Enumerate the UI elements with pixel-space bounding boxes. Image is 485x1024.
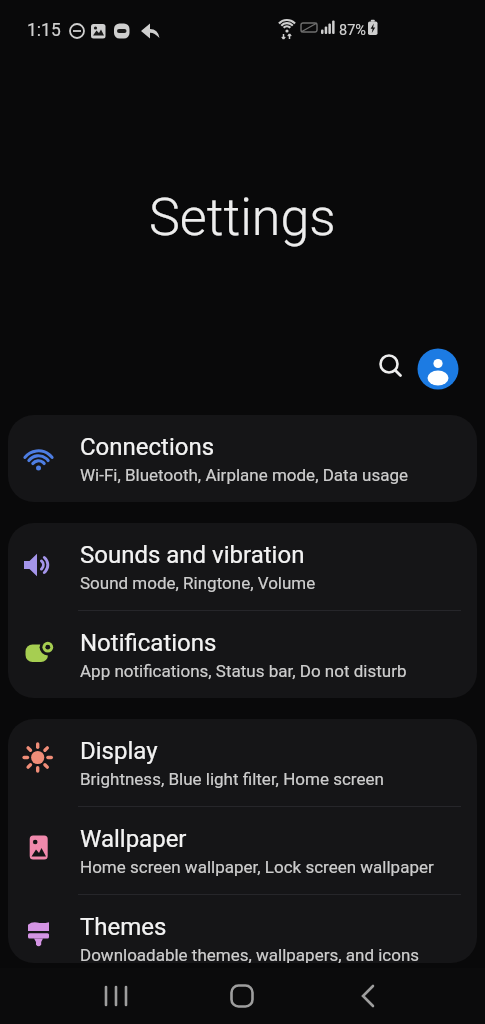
staticText: Sounds and vibration — [80, 541, 305, 569]
button[interactable]: Notifications — [8, 611, 477, 698]
staticText: 1:15 — [27, 20, 61, 41]
button[interactable]: Wallpaper — [8, 807, 477, 894]
staticText: Downloadable themes, wallpapers, and ico… — [80, 945, 420, 963]
staticText: 87% — [339, 22, 366, 39]
staticText: Display — [80, 737, 158, 765]
staticText: Themes — [80, 913, 167, 941]
staticText: Wallpaper — [80, 825, 187, 853]
button[interactable] — [348, 976, 388, 1016]
staticText: App notifications, Status bar, Do not di… — [80, 661, 407, 681]
button[interactable]: Themes — [8, 895, 477, 963]
button[interactable]: Sounds and vibration — [8, 523, 477, 610]
staticText: Notifications — [80, 629, 217, 657]
staticText: Brightness, Blue light filter, Home scre… — [80, 769, 384, 789]
staticText: Wi-Fi, Bluetooth, Airplane mode, Data us… — [80, 465, 409, 485]
button[interactable]: Display — [8, 719, 477, 806]
staticText: Home screen wallpaper, Lock screen wallp… — [80, 857, 434, 877]
button[interactable] — [222, 976, 262, 1016]
staticText: Connections — [80, 433, 215, 461]
button[interactable] — [376, 352, 404, 380]
button[interactable] — [96, 976, 136, 1016]
staticText: Sound mode, Ringtone, Volume — [80, 573, 316, 593]
button[interactable]: Connections — [8, 415, 477, 502]
button[interactable] — [417, 348, 459, 390]
staticText: Settings — [149, 187, 336, 248]
